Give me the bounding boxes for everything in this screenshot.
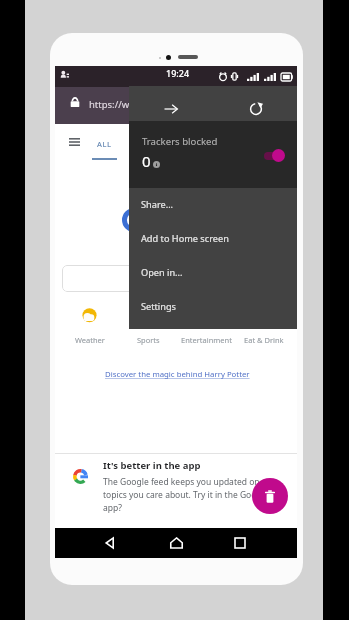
- button[interactable]: Menu: [63, 131, 85, 153]
- staticText: Trackers blocked: [142, 135, 218, 148]
- staticText: Open in...: [141, 266, 183, 279]
- button[interactable]: [62, 265, 291, 292]
- button[interactable]: Settings: [129, 289, 297, 323]
- staticText: Discover the magic behind Harry Potter: [105, 369, 250, 380]
- staticText: Settings: [141, 300, 176, 313]
- staticText: Entertainment: [181, 335, 232, 345]
- button[interactable]: ALL: [88, 133, 120, 163]
- button[interactable]: Home: [161, 528, 191, 558]
- staticText: ALL: [97, 139, 112, 149]
- button[interactable]: Toggle tracker blocking: [261, 145, 289, 166]
- button[interactable]: Open in...: [129, 255, 297, 289]
- staticText: Sports: [137, 335, 160, 345]
- button[interactable]: Back: [95, 528, 125, 558]
- button[interactable]: Add to Home screen: [129, 221, 297, 255]
- button[interactable]: Reload: [239, 86, 272, 132]
- staticText: 19:24: [166, 67, 190, 79]
- button[interactable]: Discover the magic behind Harry Potter: [105, 369, 250, 380]
- staticText: Share...: [141, 198, 174, 211]
- staticText: 0: [142, 151, 151, 171]
- staticText: It's better in the app: [103, 459, 201, 472]
- staticText: Eat & Drink: [244, 335, 284, 345]
- staticText: The Google feed keeps you updated on top…: [103, 476, 269, 513]
- button[interactable]: Recents: [225, 528, 255, 558]
- staticText: https://ww: [89, 98, 137, 111]
- staticText: Add to Home screen: [141, 232, 229, 245]
- staticText: Weather: [75, 335, 105, 345]
- button[interactable]: Delete: [252, 478, 288, 514]
- button[interactable]: Share...: [129, 187, 297, 221]
- button[interactable]: Forward: [154, 86, 187, 132]
